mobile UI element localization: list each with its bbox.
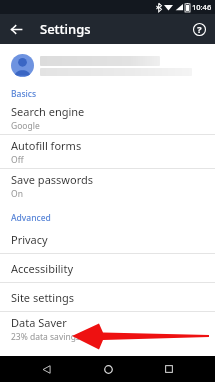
staticText: Off [11,154,24,166]
button[interactable]: Autofill forms [0,135,215,168]
staticText: Save passwords [11,172,93,187]
button[interactable]: Recent apps [154,356,184,382]
button[interactable]: Back [3,16,29,42]
staticText: Data Saver [11,315,67,330]
staticText: 23% data savings [11,331,80,343]
button[interactable]: Back [31,356,61,382]
staticText: Google [11,120,40,132]
button[interactable] [0,44,215,87]
staticText: Privacy [11,232,48,247]
button[interactable]: Help and feedback [186,16,212,42]
staticText: 10:46 [192,2,212,12]
staticText: Advanced [11,212,51,224]
staticText: Settings [40,20,91,38]
button[interactable]: Save passwords [0,169,215,202]
staticText: ? [197,23,202,35]
button[interactable]: Data Saver [0,312,215,345]
staticText: Search engine [11,104,85,119]
button[interactable]: Accessibility [0,254,215,282]
button[interactable]: Home [93,356,123,382]
button[interactable]: Privacy [0,225,215,253]
staticText: On [11,188,23,200]
button[interactable]: Site settings [0,283,215,311]
staticText: Autofill forms [11,138,82,153]
staticText: Basics [11,88,37,100]
button[interactable]: Search engine [0,101,215,134]
staticText: Site settings [11,290,74,305]
staticText: Accessibility [11,261,74,276]
